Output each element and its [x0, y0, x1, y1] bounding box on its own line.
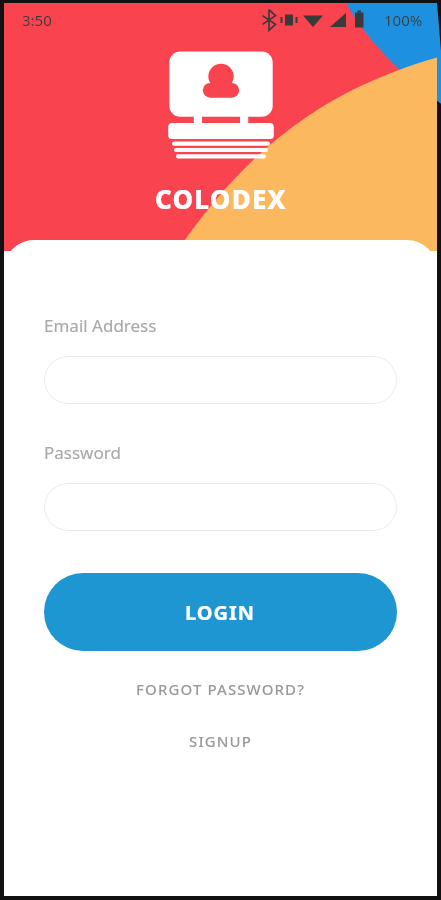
staticText: SIGNUP	[189, 731, 252, 751]
staticText: Password	[44, 441, 121, 464]
staticText: FORGOT PASSWORD?	[136, 679, 305, 699]
button[interactable]: SIGNUP	[44, 719, 397, 763]
button[interactable]: LOGIN	[44, 573, 397, 651]
button[interactable]	[44, 483, 397, 531]
staticText: LOGIN	[185, 599, 256, 626]
staticText: COLODEX	[155, 181, 287, 216]
staticText: 100%	[384, 10, 423, 30]
button[interactable]: FORGOT PASSWORD?	[44, 665, 397, 713]
button[interactable]	[44, 356, 397, 404]
staticText: 3:50	[22, 10, 52, 30]
staticText: Email Address	[44, 314, 157, 337]
